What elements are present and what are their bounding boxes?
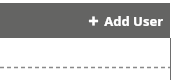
staticText: Add User xyxy=(104,12,163,30)
button[interactable]: Add xyxy=(88,12,163,30)
other: Add xyxy=(88,14,99,28)
